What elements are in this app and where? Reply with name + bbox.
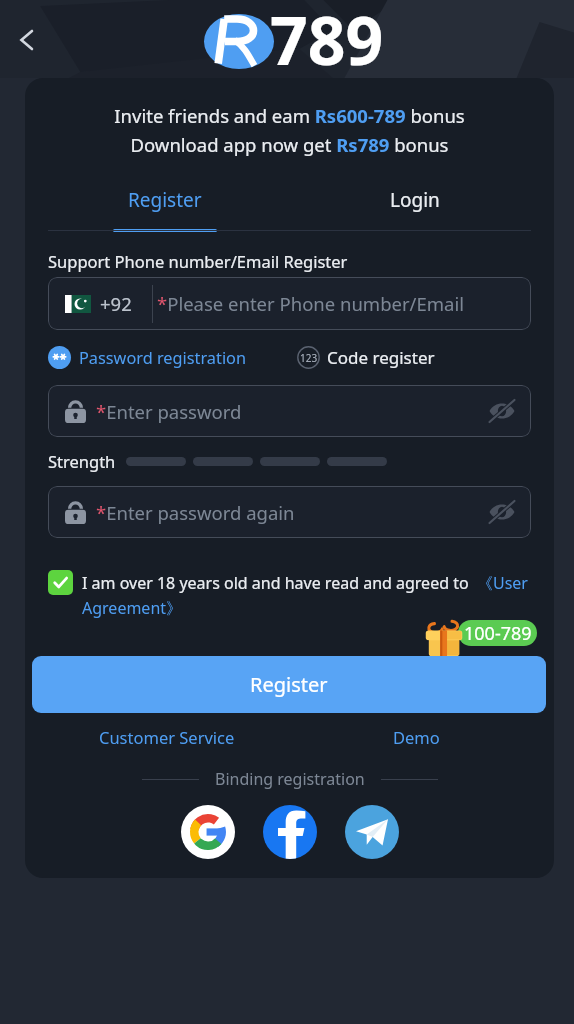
staticText: *Enter password again: [96, 500, 295, 525]
staticText: Register: [128, 187, 202, 213]
button[interactable]: *Enter password: [48, 385, 531, 437]
button[interactable]: +92: [48, 277, 531, 330]
staticText: *Enter password: [96, 399, 242, 424]
staticText: *Please enter Phone number/Email: [157, 291, 465, 316]
staticText: 100-789: [464, 621, 532, 646]
button[interactable]: Sign in with Facebook: [263, 805, 317, 859]
button[interactable]: Password registration: [48, 346, 247, 369]
staticText: 123: [300, 351, 318, 365]
staticText: Invite friends and eam Rs600-789 bonus: [25, 103, 554, 128]
staticText: Code register: [327, 346, 435, 369]
staticText: Download app now get Rs789 bonus: [25, 132, 554, 157]
button[interactable]: Sign in with Telegram: [345, 805, 399, 859]
staticText: Support Phone number/Email Register: [48, 250, 348, 272]
staticText: +92: [100, 291, 132, 316]
staticText: Customer Service: [99, 726, 235, 748]
staticText: 789: [270, 0, 384, 84]
button[interactable]: Login: [289, 187, 540, 229]
staticText: Binding registration: [215, 768, 365, 790]
button[interactable]: *Enter password again: [48, 486, 531, 538]
button[interactable]: Back: [3, 17, 49, 63]
button[interactable]: Sign in with Google: [181, 805, 235, 859]
button[interactable]: Demo: [393, 726, 440, 748]
button[interactable]: Register: [32, 656, 546, 713]
staticText: Password registration: [79, 347, 247, 369]
button[interactable]: Register: [48, 187, 282, 232]
button[interactable]: Agree checkbox: [48, 570, 73, 595]
staticText: Strength: [48, 450, 116, 472]
button[interactable]: 123: [297, 346, 435, 369]
button[interactable]: Customer Service: [99, 726, 235, 748]
staticText: Demo: [393, 726, 440, 748]
staticText: I am over 18 years old and have read and…: [82, 572, 531, 619]
staticText: Login: [390, 187, 440, 213]
staticText: Register: [250, 671, 328, 698]
